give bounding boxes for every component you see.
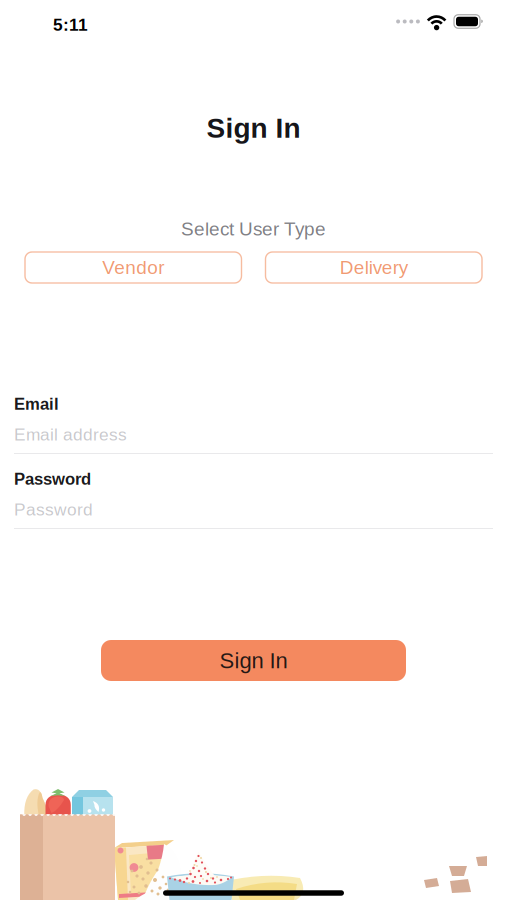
button[interactable]: Vendor	[25, 252, 241, 283]
staticText: Delivery	[340, 257, 408, 278]
staticText: Password	[14, 500, 93, 519]
button[interactable]: Delivery	[265, 252, 482, 283]
staticText: 5:11	[53, 15, 87, 34]
staticText: Email	[14, 395, 59, 413]
staticText: Password	[14, 470, 91, 488]
staticText: Vendor	[102, 257, 164, 278]
button[interactable]: Sign In	[101, 640, 406, 681]
staticText: Select User Type	[181, 218, 326, 240]
staticText: Sign In	[219, 648, 287, 673]
staticText: Email address	[14, 425, 127, 444]
staticText: Sign In	[206, 112, 300, 144]
